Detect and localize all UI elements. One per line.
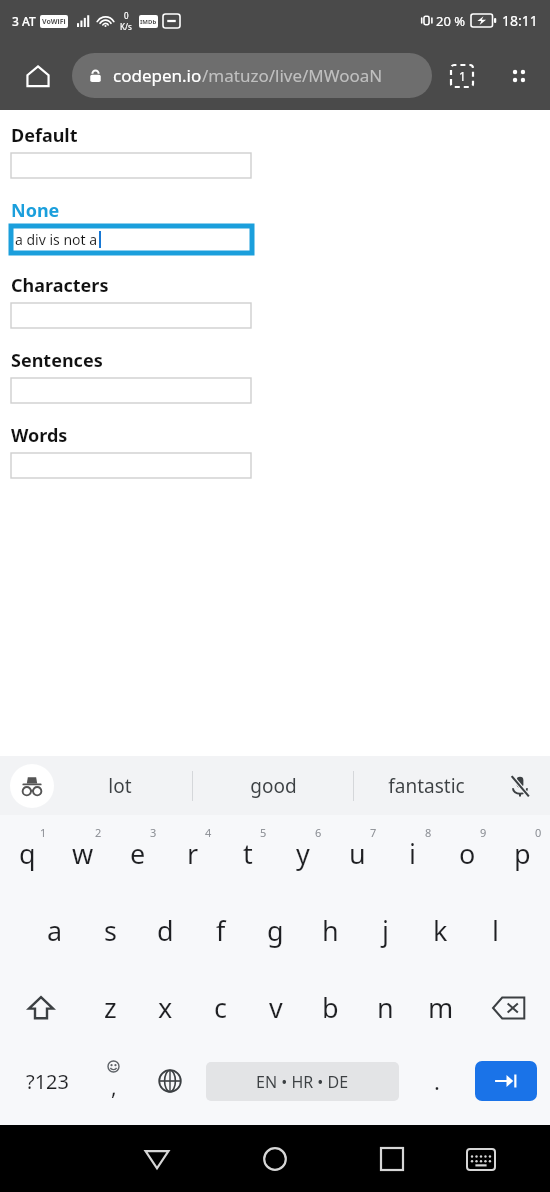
button[interactable]: Incognito [10,764,54,808]
staticText: g [267,912,284,949]
staticText: Characters [11,273,109,298]
staticText: b [322,989,339,1026]
staticText: 4 [205,825,212,840]
staticText: lot [108,773,132,799]
button[interactable]: Back [133,1135,181,1183]
staticText: c [214,989,227,1026]
button[interactable]: EN • HR • DE [206,1062,399,1101]
button[interactable]: Hide keyboard [457,1135,505,1183]
staticText: z [104,989,117,1026]
button[interactable]: lot [48,756,192,815]
staticText: h [322,912,339,949]
staticText: k [433,912,448,949]
button[interactable]: w [55,815,110,892]
button[interactable]: good [201,756,345,815]
button[interactable]: Next field [475,1061,537,1101]
staticText: 5 [260,825,267,840]
staticText: fantastic [388,773,465,799]
staticText: a div is not a [15,230,98,249]
button[interactable]: i [385,815,440,892]
staticText: Sentences [11,348,103,373]
staticText: good [250,773,297,799]
button[interactable]: d [138,892,193,969]
staticText: t [243,835,253,872]
staticText: f [216,912,226,949]
button[interactable]: l [468,892,523,969]
staticText: n [377,989,394,1026]
staticText: w [72,835,94,872]
button[interactable]: s [83,892,138,969]
button[interactable] [11,453,251,478]
staticText: 3 [150,825,157,840]
button[interactable]: x [138,969,193,1046]
button[interactable]: y [275,815,330,892]
button[interactable]: o [440,815,495,892]
staticText: l [492,912,499,949]
button[interactable]: Home [20,58,56,94]
button[interactable]: Shift [0,969,82,1046]
staticText: 9 [480,825,487,840]
button[interactable]: n [358,969,413,1046]
staticText: 3 AT [12,13,36,29]
button[interactable]: f [193,892,248,969]
button[interactable]: Tabs [443,57,481,95]
button[interactable]: z [82,969,138,1046]
button[interactable] [11,153,251,178]
button[interactable]: Home [251,1135,299,1183]
staticText: EN • HR • DE [256,1071,349,1093]
staticText: d [157,912,174,949]
staticText: s [104,912,117,949]
staticText: v [269,989,283,1026]
staticText: Default [11,123,78,148]
staticText: Words [11,423,68,448]
button[interactable]: b [303,969,358,1046]
staticText: e [130,835,146,872]
button[interactable]: Emoji and comma [88,1051,138,1111]
staticText: 18:11 [502,11,538,30]
button[interactable]: p [495,815,550,892]
staticText: j [382,912,389,949]
staticText: r [187,835,199,872]
button[interactable]: j [358,892,413,969]
button[interactable]: g [248,892,303,969]
button[interactable]: e [110,815,165,892]
staticText: u [349,835,366,872]
staticText: 20 % [436,12,466,30]
button[interactable]: codepen.io [72,53,432,98]
staticText: y [296,835,310,872]
button[interactable]: v [248,969,303,1046]
staticText: /matuzo/live/MWooaN [202,64,383,87]
button[interactable] [11,378,251,403]
button[interactable]: c [193,969,248,1046]
button[interactable]: t [220,815,275,892]
button[interactable]: Voice input off [498,764,542,808]
staticText: codepen.io [113,64,202,87]
button[interactable]: More options [500,57,538,95]
button[interactable]: a [27,892,83,969]
button[interactable]: r [165,815,220,892]
button[interactable] [11,303,251,328]
staticText: 2 [95,825,102,840]
button[interactable]: k [413,892,468,969]
button[interactable]: . [410,1051,464,1111]
staticText: . [434,1066,440,1096]
staticText: 0 [124,10,129,21]
button[interactable]: Backspace [468,969,550,1046]
staticText: 7 [370,825,377,840]
button[interactable]: a div is not a [11,226,252,253]
button[interactable]: h [303,892,358,969]
button[interactable]: Recents [368,1135,416,1183]
button[interactable]: m [413,969,468,1046]
button[interactable]: ?123 [8,1051,86,1111]
button[interactable]: q [0,815,55,892]
staticText: 0 [535,825,542,840]
button[interactable]: Change language [143,1054,197,1108]
staticText: i [409,835,416,872]
staticText: K/s [120,21,132,32]
staticText: 6 [315,825,322,840]
staticText: IMDb [140,18,157,26]
button[interactable]: fantastic [354,756,498,815]
staticText: x [158,989,173,1026]
button[interactable]: u [330,815,385,892]
staticText: ?123 [26,1068,69,1095]
